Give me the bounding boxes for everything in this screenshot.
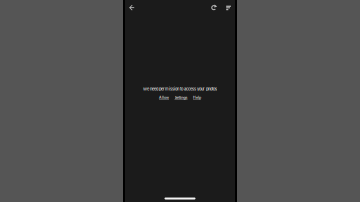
staticText: Help	[193, 95, 201, 100]
button[interactable]: Allow	[159, 95, 169, 100]
button[interactable]: Filter options	[224, 1, 236, 14]
staticText: Settings	[174, 95, 187, 100]
button[interactable]: Refresh	[208, 1, 220, 14]
staticText: We need permission to access your photos	[143, 86, 217, 91]
button[interactable]: Help	[193, 95, 201, 100]
button[interactable]: Back	[125, 1, 138, 14]
button[interactable]: Settings	[174, 95, 187, 100]
staticText: Allow	[159, 95, 169, 100]
